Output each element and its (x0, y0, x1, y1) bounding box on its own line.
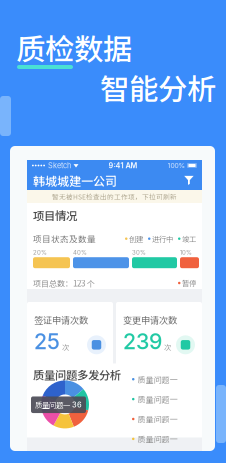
button[interactable]: 筛选 (182, 173, 196, 187)
staticText: 10% (180, 249, 192, 256)
button[interactable]: 变更申请次数 (116, 302, 202, 367)
staticText: 创建 (129, 233, 143, 244)
staticText: 韩城城建一公司 (33, 172, 117, 189)
staticText: 暂无被HSE检查出的工作项，下拉可刷新 (52, 192, 177, 201)
staticText: 质量问题一 (35, 399, 70, 410)
staticText: 质量问题多发分析 (33, 366, 121, 383)
staticText: 项目总数：123 个 (33, 277, 95, 289)
staticText: Sketch (48, 161, 71, 170)
staticText: 次 (164, 342, 171, 352)
staticText: 100% (167, 161, 185, 170)
staticText: 项目状态及数量 (33, 232, 96, 245)
staticText: 进行中 (152, 233, 173, 244)
staticText: 质量问题一 (137, 433, 177, 445)
staticText: 次 (62, 342, 69, 352)
staticText: 质量问题一 (137, 413, 177, 425)
staticText: 25 (34, 328, 60, 354)
staticText: 暂停 (182, 278, 196, 288)
staticText: 智能分析 (100, 66, 216, 108)
staticText: 239 (123, 328, 162, 354)
staticText: 30% (132, 249, 146, 256)
staticText: 40% (73, 249, 87, 256)
staticText: 变更申请次数 (123, 313, 177, 326)
staticText: 质量问题一 (137, 373, 177, 385)
staticText: 质量问题一 (137, 393, 177, 405)
button[interactable]: 签证申请次数 (27, 302, 113, 367)
staticText: 竣工 (182, 233, 196, 244)
staticText: 20% (33, 249, 47, 256)
staticText: 9:41 AM (108, 161, 137, 170)
staticText: 质检数据 (16, 26, 132, 68)
staticText: 36 (72, 400, 82, 409)
staticText: 项目情况 (33, 207, 77, 223)
staticText: 签证申请次数 (34, 313, 88, 326)
